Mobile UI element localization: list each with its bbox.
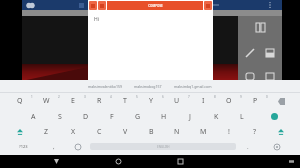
- button[interactable]: Home: [112, 155, 125, 168]
- staticText: K: [214, 112, 219, 122]
- button[interactable]: Shape: [242, 73, 258, 80]
- button[interactable]: Pen: [242, 45, 258, 61]
- button[interactable]: Attach: [98, 1, 106, 10]
- button[interactable]: H: [151, 109, 177, 124]
- staticText: E: [71, 96, 75, 106]
- staticText: V: [123, 127, 128, 137]
- button[interactable]: Back: [50, 155, 63, 168]
- staticText: 4: [110, 95, 112, 99]
- staticText: 1: [31, 95, 33, 99]
- button[interactable]: Z: [33, 124, 60, 139]
- staticText: U: [174, 96, 180, 106]
- staticText: 5: [136, 95, 138, 99]
- staticText: Hi: [94, 16, 99, 23]
- button[interactable]: Settings: [260, 141, 294, 152]
- button[interactable]: Library: [252, 19, 268, 35]
- button[interactable]: More options: [264, 0, 276, 10]
- button[interactable]: Backspace: [268, 93, 294, 109]
- button[interactable]: Action: [108, 0, 118, 10]
- button[interactable]: Q: [6, 93, 33, 109]
- button[interactable]: C: [86, 124, 112, 139]
- staticText: 3: [84, 95, 86, 99]
- staticText: 2: [58, 95, 60, 99]
- button[interactable]: Account: [26, 1, 35, 10]
- button[interactable]: D: [73, 109, 99, 124]
- button[interactable]: R: [86, 93, 112, 109]
- button[interactable]: Space: [90, 143, 236, 150]
- button[interactable]: Emoji: [66, 141, 90, 152]
- staticText: H: [161, 112, 167, 122]
- staticText: M: [200, 127, 207, 137]
- button[interactable]: Send: [204, 1, 212, 10]
- button[interactable]: S: [47, 109, 73, 124]
- button[interactable]: Crop: [262, 73, 278, 80]
- button[interactable]: V: [112, 124, 138, 139]
- staticText: !: [228, 127, 230, 137]
- staticText: maksimbq1.gmail.com: [174, 84, 212, 89]
- button[interactable]: B: [138, 124, 164, 139]
- staticText: maksimobog157: [134, 84, 162, 89]
- button[interactable]: Action: [76, 0, 86, 10]
- button[interactable]: Keyboard: [285, 155, 298, 168]
- button[interactable]: Enter: [255, 109, 294, 124]
- button[interactable]: Close: [89, 1, 97, 10]
- button[interactable]: T: [112, 93, 138, 109]
- button[interactable]: maksimvalentiko159: [88, 84, 122, 89]
- button[interactable]: N: [164, 124, 190, 139]
- staticText: G: [135, 112, 141, 122]
- staticText: 8: [214, 95, 216, 99]
- staticText: ?123: [19, 144, 28, 149]
- button[interactable]: maksimbq1.gmail.com: [174, 84, 212, 89]
- staticText: ?: [253, 127, 257, 137]
- staticText: P: [253, 96, 258, 106]
- button[interactable]: W: [33, 93, 60, 109]
- staticText: S: [58, 112, 62, 122]
- staticText: J: [189, 112, 191, 122]
- staticText: Q: [17, 96, 23, 106]
- button[interactable]: M: [190, 124, 216, 139]
- button[interactable]: Recents: [174, 155, 187, 168]
- staticText: 6: [162, 95, 164, 99]
- button[interactable]: P: [242, 93, 268, 109]
- button[interactable]: Shift right: [268, 124, 294, 139]
- staticText: W: [43, 96, 50, 106]
- staticText: ,: [53, 143, 55, 151]
- button[interactable]: E: [60, 93, 86, 109]
- staticText: 0: [266, 95, 268, 99]
- button[interactable]: U: [164, 93, 190, 109]
- staticText: R: [97, 96, 102, 106]
- button[interactable]: I: [190, 93, 216, 109]
- button[interactable]: J: [177, 109, 203, 124]
- button[interactable]: Undo: [210, 0, 222, 10]
- staticText: 9: [240, 95, 242, 99]
- staticText: Z: [44, 127, 49, 137]
- button[interactable]: ?123: [6, 141, 41, 152]
- button[interactable]: Shift: [6, 124, 33, 139]
- button[interactable]: .: [236, 141, 260, 152]
- staticText: COMPOSE: [148, 4, 163, 8]
- button[interactable]: COMPOSE: [107, 1, 203, 10]
- staticText: N: [174, 127, 180, 137]
- button[interactable]: Y: [138, 93, 164, 109]
- button[interactable]: K: [203, 109, 229, 124]
- button[interactable]: X: [60, 124, 86, 139]
- staticText: B: [149, 127, 154, 137]
- staticText: L: [240, 112, 244, 122]
- button[interactable]: !: [216, 124, 242, 139]
- button[interactable]: F: [99, 109, 125, 124]
- staticText: 7: [188, 95, 190, 99]
- staticText: A: [31, 112, 36, 122]
- button[interactable]: maksimobog157: [134, 84, 162, 89]
- button[interactable]: A: [20, 109, 47, 124]
- button[interactable]: ,: [41, 141, 66, 152]
- button[interactable]: Eraser: [262, 45, 278, 61]
- button[interactable]: L: [229, 109, 255, 124]
- button[interactable]: Share: [182, 0, 194, 10]
- staticText: D: [83, 112, 89, 122]
- button[interactable]: G: [125, 109, 151, 124]
- staticText: C: [97, 127, 102, 137]
- button[interactable]: ?: [242, 124, 268, 139]
- button[interactable]: O: [216, 93, 242, 109]
- staticText: .: [247, 143, 249, 151]
- staticText: X: [71, 127, 76, 137]
